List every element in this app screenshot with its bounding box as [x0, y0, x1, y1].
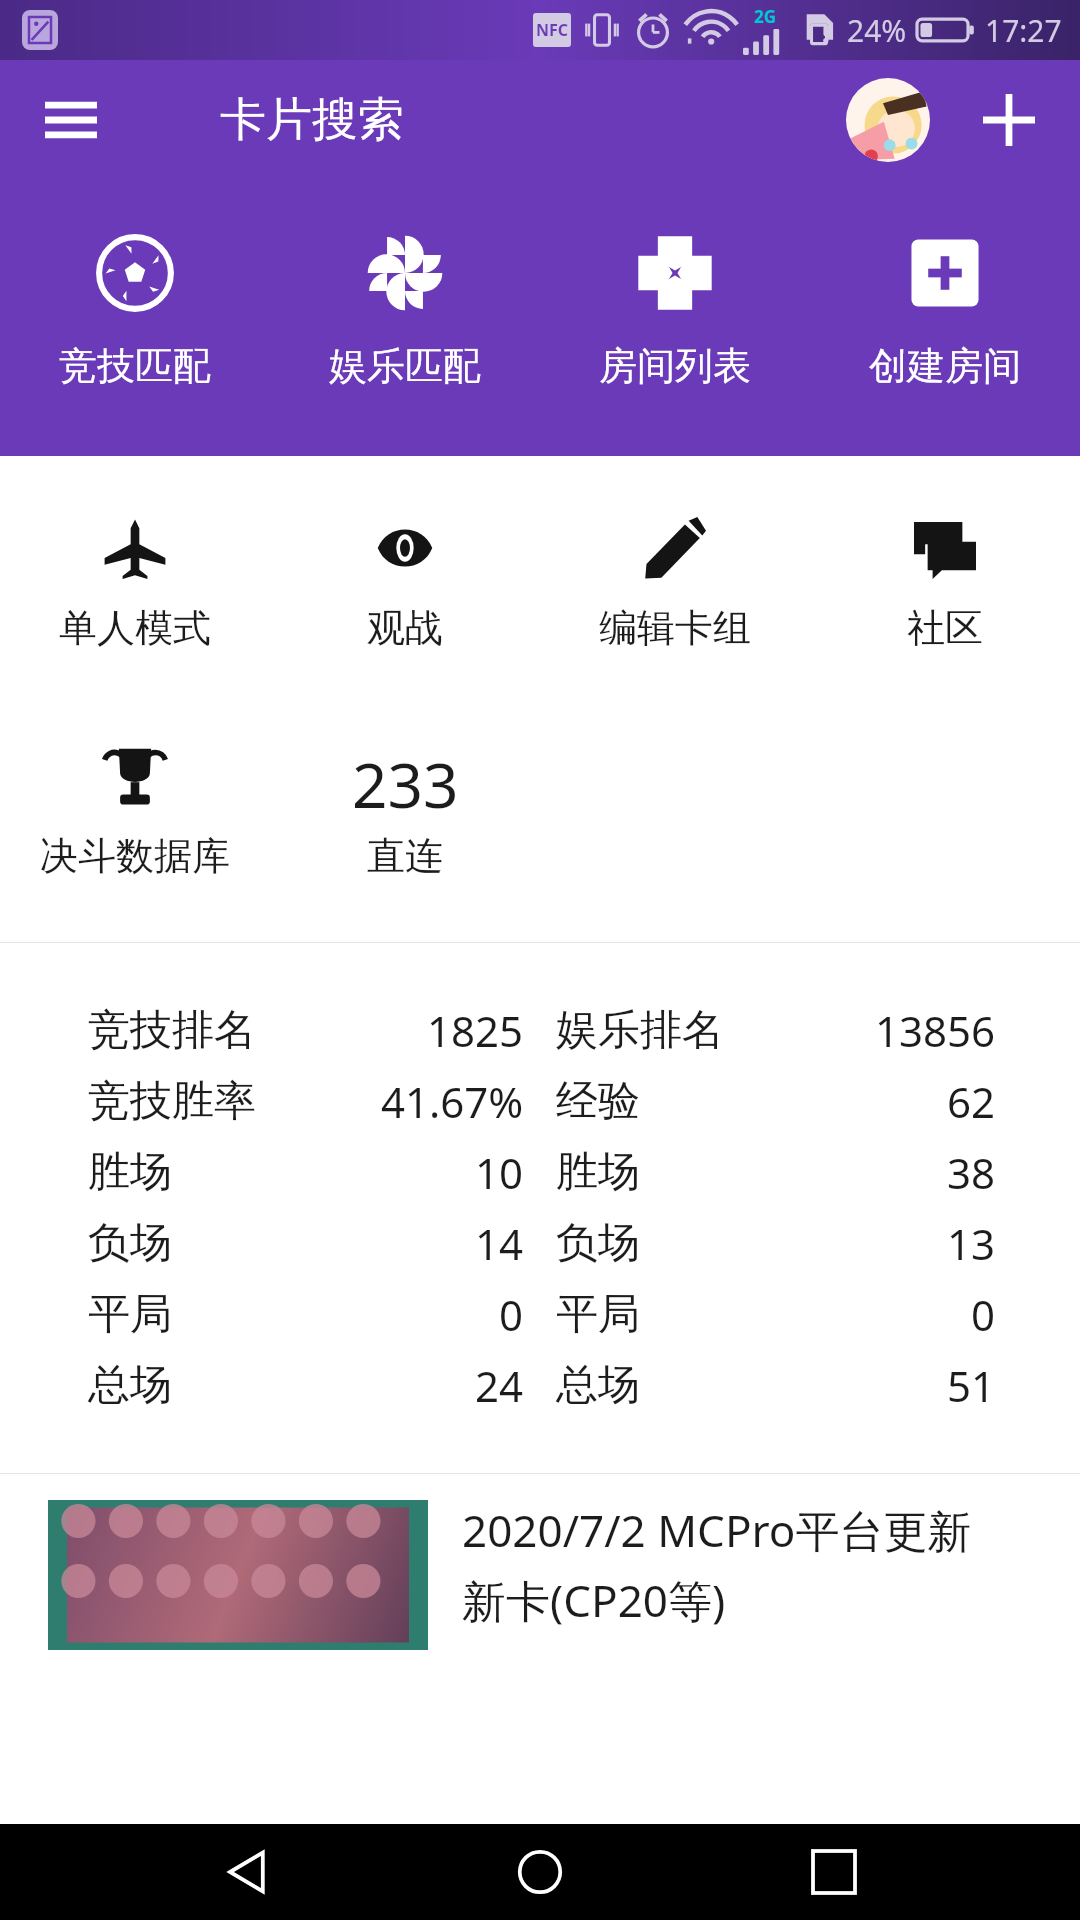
staticText: 经验: [556, 1075, 640, 1128]
button[interactable]: 单人模式: [0, 514, 270, 652]
staticText: 38: [947, 1144, 996, 1201]
button[interactable]: Back: [198, 1824, 294, 1920]
staticText: 卡片搜索: [220, 91, 404, 149]
staticText: 总场: [88, 1359, 172, 1412]
staticText: 41.67%: [381, 1073, 524, 1130]
staticText: 胜场: [88, 1146, 172, 1199]
button[interactable]: 233: [270, 742, 540, 880]
button[interactable]: 社区: [810, 514, 1080, 652]
staticText: 娱乐匹配: [329, 342, 481, 390]
staticText: 竞技排名: [88, 1004, 256, 1057]
staticText: 1825: [427, 1002, 524, 1059]
button[interactable]: 房间列表: [540, 230, 810, 394]
staticText: 233: [352, 742, 459, 810]
staticText: 负场: [88, 1217, 172, 1270]
staticText: 总场: [556, 1359, 640, 1412]
button[interactable]: 观战: [270, 514, 540, 652]
button[interactable]: 创建房间: [810, 230, 1080, 394]
button[interactable]: Recents: [786, 1824, 882, 1920]
staticText: 2G: [754, 5, 777, 28]
button[interactable]: 决斗数据库: [0, 742, 270, 880]
staticText: 决斗数据库: [40, 832, 230, 880]
staticText: 62: [947, 1073, 996, 1130]
staticText: 社区: [907, 604, 983, 652]
staticText: 10: [475, 1144, 524, 1201]
button[interactable]: Menu: [36, 85, 106, 155]
button[interactable]: 娱乐匹配: [270, 230, 540, 394]
staticText: 51: [947, 1357, 996, 1414]
staticText: 13856: [875, 1002, 996, 1059]
staticText: 24: [475, 1357, 524, 1414]
staticText: 0: [499, 1286, 524, 1343]
staticText: 创建房间: [869, 342, 1021, 390]
staticText: 胜场: [556, 1146, 640, 1199]
staticText: 新卡(CP20等): [462, 1570, 726, 1630]
button[interactable]: 编辑卡组: [540, 514, 810, 652]
staticText: 编辑卡组: [599, 604, 751, 652]
staticText: 14: [475, 1215, 524, 1272]
staticText: 房间列表: [599, 342, 751, 390]
button[interactable]: Add: [974, 85, 1044, 155]
staticText: 竞技匹配: [59, 342, 211, 390]
staticText: 24%: [847, 10, 907, 51]
staticText: 负场: [556, 1217, 640, 1270]
staticText: 单人模式: [59, 604, 211, 652]
staticText: 平局: [88, 1288, 172, 1341]
staticText: 直连: [367, 832, 443, 880]
staticText: 0: [971, 1286, 996, 1343]
staticText: 平局: [556, 1288, 640, 1341]
staticText: 13: [947, 1215, 996, 1272]
button[interactable]: Home: [492, 1824, 588, 1920]
staticText: 17:27: [985, 10, 1062, 51]
staticText: 2020/7/2 MCPro平台更新: [462, 1500, 972, 1560]
staticText: 娱乐排名: [556, 1004, 724, 1057]
staticText: 观战: [367, 604, 443, 652]
button[interactable]: 2020/7/2 MCPro平台更新: [0, 1474, 1080, 1650]
staticText: 竞技胜率: [88, 1075, 256, 1128]
staticText: NFC: [536, 19, 569, 41]
button[interactable]: Profile: [846, 78, 930, 162]
button[interactable]: 竞技匹配: [0, 230, 270, 394]
